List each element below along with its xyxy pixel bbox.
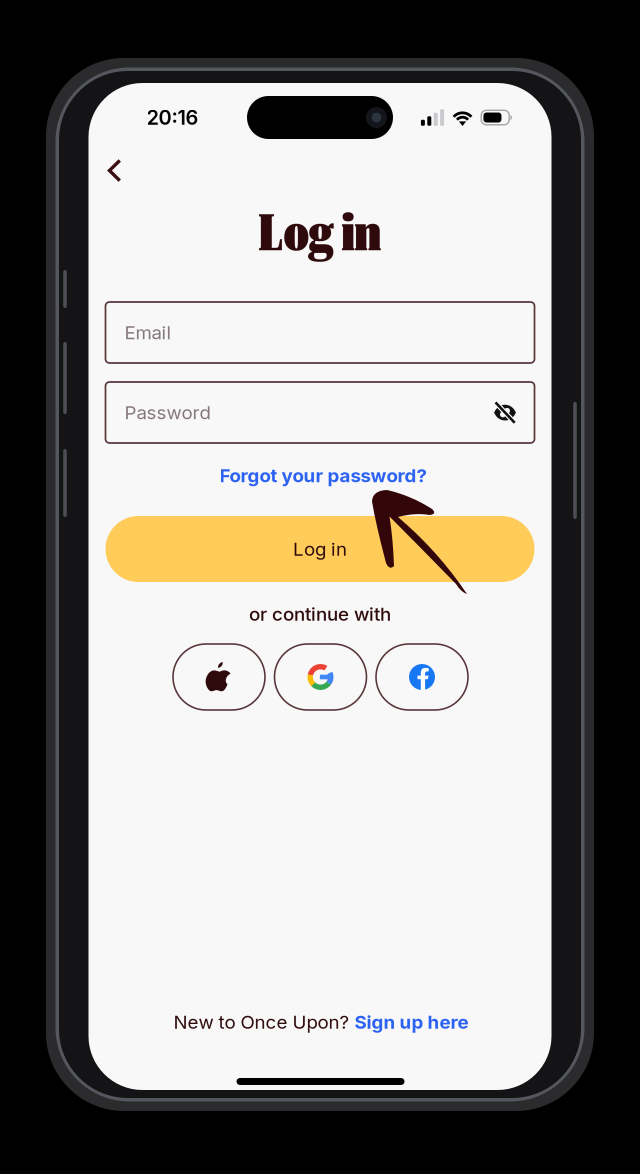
- staticText: Password: [124, 401, 210, 424]
- staticText: New to Once Upon?: [173, 1011, 354, 1033]
- button[interactable]: Sign up here: [354, 1011, 468, 1033]
- button[interactable]: Continue with Facebook: [376, 644, 468, 710]
- button[interactable]: Log in: [105, 516, 534, 582]
- button[interactable]: Continue with Apple: [173, 644, 265, 710]
- button[interactable]: Back: [92, 148, 136, 192]
- staticText: Forgot your password?: [219, 464, 426, 487]
- staticText: or continue with: [249, 603, 391, 625]
- staticText: Log in: [293, 538, 347, 560]
- button[interactable]: Forgot your password?: [193, 461, 453, 489]
- staticText: Log in: [258, 203, 381, 263]
- staticText: Sign up here: [354, 1011, 468, 1033]
- button[interactable]: Continue with Google: [274, 644, 366, 710]
- staticText: Email: [124, 321, 171, 344]
- staticText: 20:16: [146, 105, 198, 130]
